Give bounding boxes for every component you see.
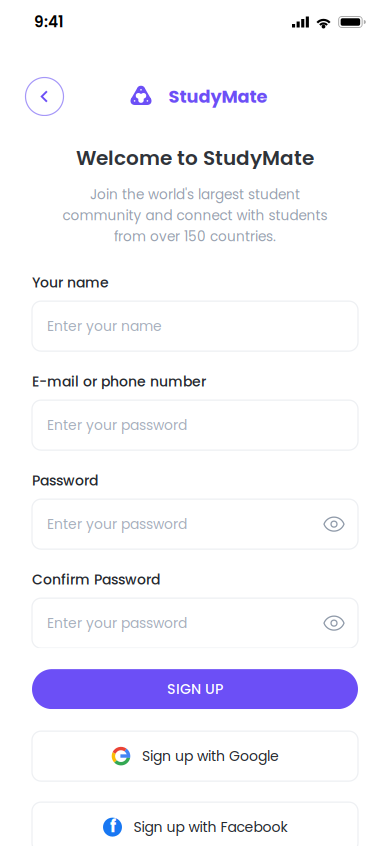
staticText: Enter your password	[47, 514, 187, 534]
staticText: Sign up with Google	[142, 746, 279, 766]
staticText: Join the world's largest student	[90, 185, 300, 204]
staticText: Welcome to StudyMate	[76, 144, 314, 172]
staticText: Enter your name	[47, 316, 162, 336]
staticText: Confirm Password	[32, 570, 160, 589]
button[interactable]: Enter your password	[32, 598, 358, 648]
button[interactable]: Enter your name	[32, 301, 358, 351]
staticText: 9:41	[34, 11, 64, 33]
staticText: from over 150 countries.	[114, 227, 276, 246]
staticText: Enter your password	[47, 613, 187, 633]
staticText: f	[110, 814, 116, 838]
staticText: E-mail or phone number	[32, 372, 206, 391]
staticText: Sign up with Facebook	[133, 817, 287, 837]
button[interactable]: f	[32, 802, 358, 846]
button[interactable]: Sign up with Google	[32, 731, 358, 781]
button[interactable]: Back	[25, 77, 64, 116]
staticText: Password	[32, 471, 98, 490]
staticText: Enter your password	[47, 415, 187, 435]
staticText: StudyMate	[168, 84, 267, 109]
button[interactable]: Enter your password	[32, 400, 358, 450]
button[interactable]: Enter your password	[32, 499, 358, 549]
staticText: Your name	[32, 273, 109, 292]
button[interactable]: SIGN UP	[32, 669, 358, 709]
staticText: SIGN UP	[167, 679, 223, 699]
staticText: community and connect with students	[62, 206, 327, 225]
